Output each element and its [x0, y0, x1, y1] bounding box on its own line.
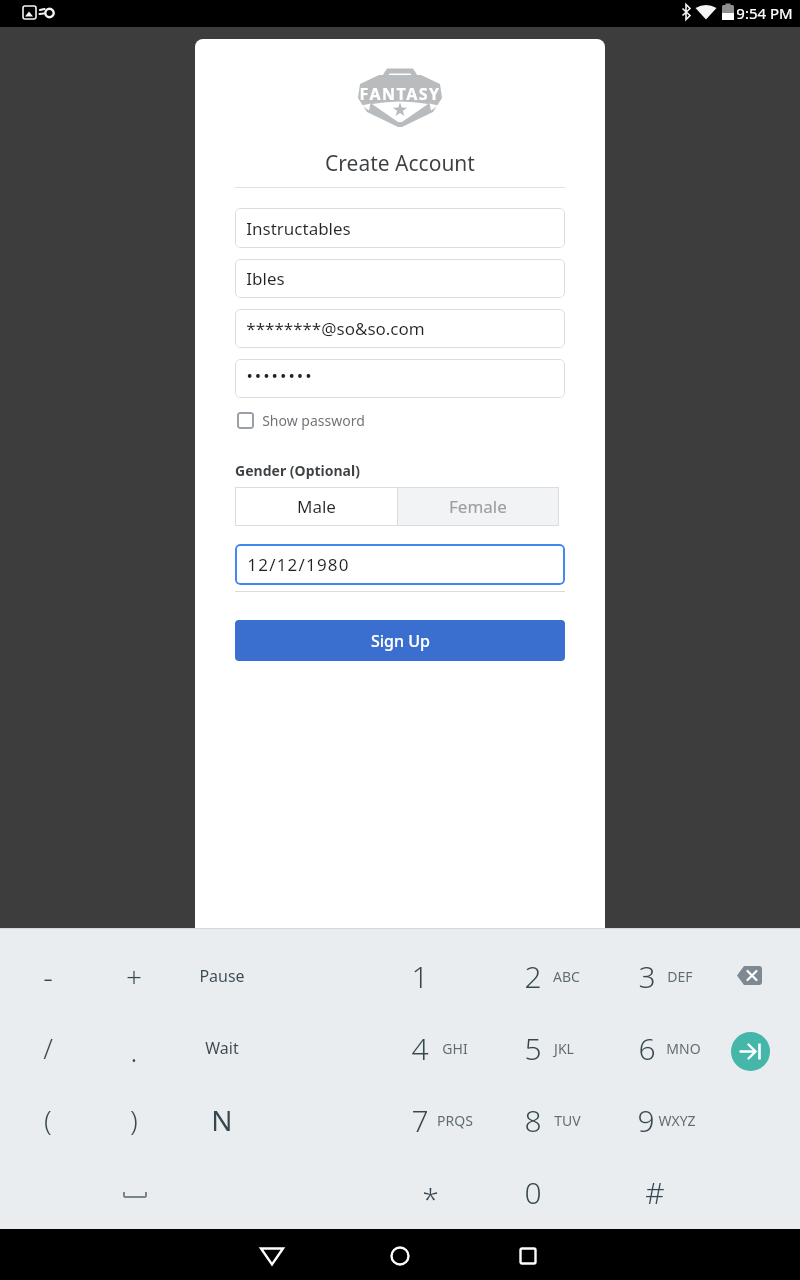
button[interactable]: Male	[235, 487, 398, 526]
staticText: Pause	[199, 965, 245, 987]
button[interactable]	[726, 952, 774, 1000]
button[interactable]: .	[104, 1026, 164, 1074]
button[interactable]: 8	[503, 1096, 563, 1144]
button[interactable]	[235, 208, 565, 248]
button[interactable]	[237, 412, 357, 430]
button[interactable]: Wait	[192, 1024, 252, 1072]
button[interactable]: +	[104, 952, 164, 1000]
staticText: N	[211, 1101, 233, 1139]
staticText: 5	[524, 1028, 542, 1069]
button[interactable]	[506, 1234, 550, 1276]
staticText: 12/12/1980	[247, 553, 350, 576]
staticText: JKL	[554, 1039, 574, 1058]
staticText: PRQS	[437, 1111, 473, 1130]
button[interactable]	[731, 1032, 770, 1071]
button[interactable]	[235, 309, 565, 348]
button[interactable]: 0	[503, 1168, 563, 1216]
staticText: FANTASY	[359, 83, 441, 103]
button[interactable]	[250, 1234, 294, 1276]
staticText: 4	[411, 1028, 429, 1069]
button[interactable]: /	[18, 1024, 78, 1072]
button[interactable]: -	[18, 952, 78, 1000]
button[interactable]: 4	[390, 1024, 450, 1072]
button[interactable]: 6	[617, 1024, 677, 1072]
staticText: 1	[411, 956, 429, 997]
staticText: DEF	[667, 967, 693, 986]
button[interactable]	[235, 359, 565, 398]
staticText: MNO	[666, 1039, 701, 1058]
button[interactable]: Female	[397, 487, 559, 526]
button[interactable]: 5	[503, 1024, 563, 1072]
staticText: 3	[638, 956, 656, 997]
button[interactable]	[235, 259, 565, 298]
staticText: ••••••••	[246, 364, 314, 387]
staticText: +	[126, 957, 142, 995]
staticText: #	[645, 1172, 665, 1213]
staticText: 0	[524, 1172, 542, 1213]
button[interactable]: (	[18, 1096, 78, 1144]
staticText: 8	[524, 1100, 542, 1141]
button[interactable]	[120, 1184, 150, 1204]
button[interactable]: Sign Up	[235, 620, 565, 661]
staticText: Male	[297, 495, 336, 518]
button[interactable]: N	[192, 1096, 252, 1144]
staticText: Female	[449, 495, 507, 518]
staticText: 9:54 PM	[736, 3, 793, 23]
staticText: (	[44, 1101, 52, 1139]
staticText: 2	[524, 956, 542, 997]
staticText: -	[43, 956, 53, 997]
staticText: Create Account	[325, 149, 475, 175]
button[interactable]: 3	[617, 952, 677, 1000]
button[interactable]	[378, 1234, 422, 1276]
button[interactable]: #	[625, 1168, 685, 1216]
staticText: *	[422, 1178, 439, 1219]
staticText: )	[130, 1101, 138, 1139]
staticText: 9	[637, 1100, 655, 1141]
staticText: Ibles	[246, 267, 285, 290]
button[interactable]: )	[104, 1096, 164, 1144]
staticText: ********@so&so.com	[246, 317, 425, 340]
staticText: /	[43, 1029, 53, 1067]
staticText: 6	[638, 1028, 656, 1069]
button[interactable]: Pause	[192, 952, 252, 1000]
staticText: Gender (Optional)	[235, 461, 360, 479]
button[interactable]: 9	[616, 1096, 676, 1144]
staticText: Wait	[205, 1037, 239, 1059]
staticText: GHI	[442, 1039, 468, 1058]
staticText: Show password	[262, 411, 365, 430]
staticText: Sign Up	[371, 630, 430, 652]
staticText: .	[130, 1030, 138, 1071]
button[interactable]	[235, 544, 565, 585]
staticText: TUV	[554, 1111, 581, 1130]
staticText: 7	[411, 1100, 429, 1141]
button[interactable]: 2	[503, 952, 563, 1000]
button[interactable]: *	[400, 1174, 460, 1222]
staticText: ABC	[553, 967, 580, 986]
button[interactable]: 7	[390, 1096, 450, 1144]
button[interactable]: 1	[390, 952, 450, 1000]
staticText: Instructables	[246, 217, 351, 240]
staticText: WXYZ	[658, 1111, 696, 1130]
